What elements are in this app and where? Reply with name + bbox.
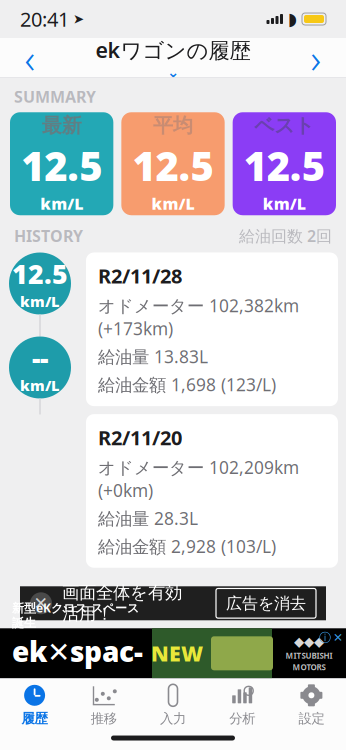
button[interactable]: 閉じる xyxy=(30,592,52,614)
button[interactable]: 前の車両 xyxy=(8,39,52,77)
staticText: ➤ xyxy=(73,11,84,26)
button[interactable]: ekワゴンの履歴 xyxy=(95,35,250,81)
staticText: オドメーター 102,209km (+0km) xyxy=(98,456,299,502)
staticText: 20:41 xyxy=(20,6,69,32)
staticText: R2/11/28 xyxy=(98,262,182,289)
staticText: 新型eKクロス スペース誕生 xyxy=(12,600,139,630)
staticText: › xyxy=(310,31,321,84)
button[interactable]: 次の車両 xyxy=(294,39,338,77)
button[interactable]: R2/11/20 xyxy=(86,414,338,568)
staticText: 分析 xyxy=(229,710,255,727)
staticText: 広告を消去 xyxy=(226,593,306,613)
staticText: MITSUBISHI xyxy=(285,650,332,661)
staticText: ‹ xyxy=(24,31,35,84)
staticText: km/L xyxy=(40,193,83,214)
staticText: オドメーター 102,382km (+173km) xyxy=(98,294,299,340)
staticText: ベスト xyxy=(254,113,314,138)
staticText: 履歴 xyxy=(22,710,48,727)
staticText: ⌄ xyxy=(167,64,179,80)
staticText: 設定 xyxy=(298,710,324,727)
button[interactable]: ベスト xyxy=(233,112,336,215)
staticText: NEW xyxy=(151,639,203,667)
staticText: 推移 xyxy=(91,710,117,727)
staticText: ◆◆◆ xyxy=(294,634,324,649)
staticText: km/L xyxy=(263,193,306,214)
staticText: 平均 xyxy=(153,113,193,138)
staticText: km/L xyxy=(151,193,194,214)
staticText: -- xyxy=(32,340,48,375)
staticText: ✕ xyxy=(33,593,48,613)
staticText: 給油回数 2回 xyxy=(239,225,332,246)
button[interactable]: 設定 xyxy=(277,683,346,727)
button[interactable]: 入力 xyxy=(138,683,208,727)
staticText: 12.5 xyxy=(12,256,68,291)
staticText: km/L xyxy=(20,291,60,311)
staticText: ek✕space xyxy=(12,632,143,707)
staticText: 画面全体を有効活用！ xyxy=(62,582,182,625)
button[interactable]: 広告を消去 xyxy=(216,588,316,618)
staticText: HISTORY xyxy=(14,225,83,246)
button[interactable]: 推移 xyxy=(69,683,138,727)
staticText: 入力 xyxy=(160,710,186,727)
button[interactable]: 履歴 xyxy=(0,683,69,727)
staticText: 12.5 xyxy=(244,139,325,192)
button[interactable]: R2/11/28 xyxy=(86,252,338,406)
staticText: ekワゴンの履歴 xyxy=(95,35,250,64)
button[interactable]: 分析 xyxy=(208,683,277,727)
staticText: ⓘ xyxy=(319,630,331,645)
staticText: MOTORS xyxy=(292,662,325,672)
button[interactable]: 最新 xyxy=(10,112,113,215)
staticText: R2/11/20 xyxy=(98,424,182,451)
staticText: 給油金額 1,698 (123/L) xyxy=(98,373,276,396)
staticText: km/L xyxy=(20,375,60,395)
staticText: ◗ xyxy=(288,9,297,29)
staticText: 給油量 28.3L xyxy=(98,507,198,530)
staticText: 12.5 xyxy=(132,139,213,192)
staticText: 12.5 xyxy=(21,139,102,192)
staticText: 給油金額 2,928 (103/L) xyxy=(98,535,276,558)
button[interactable]: 平均 xyxy=(121,112,225,215)
staticText: 最新 xyxy=(42,113,82,138)
staticText: ✕ xyxy=(333,631,343,644)
staticText: SUMMARY xyxy=(14,86,96,107)
staticText: 給油量 13.83L xyxy=(98,345,208,368)
